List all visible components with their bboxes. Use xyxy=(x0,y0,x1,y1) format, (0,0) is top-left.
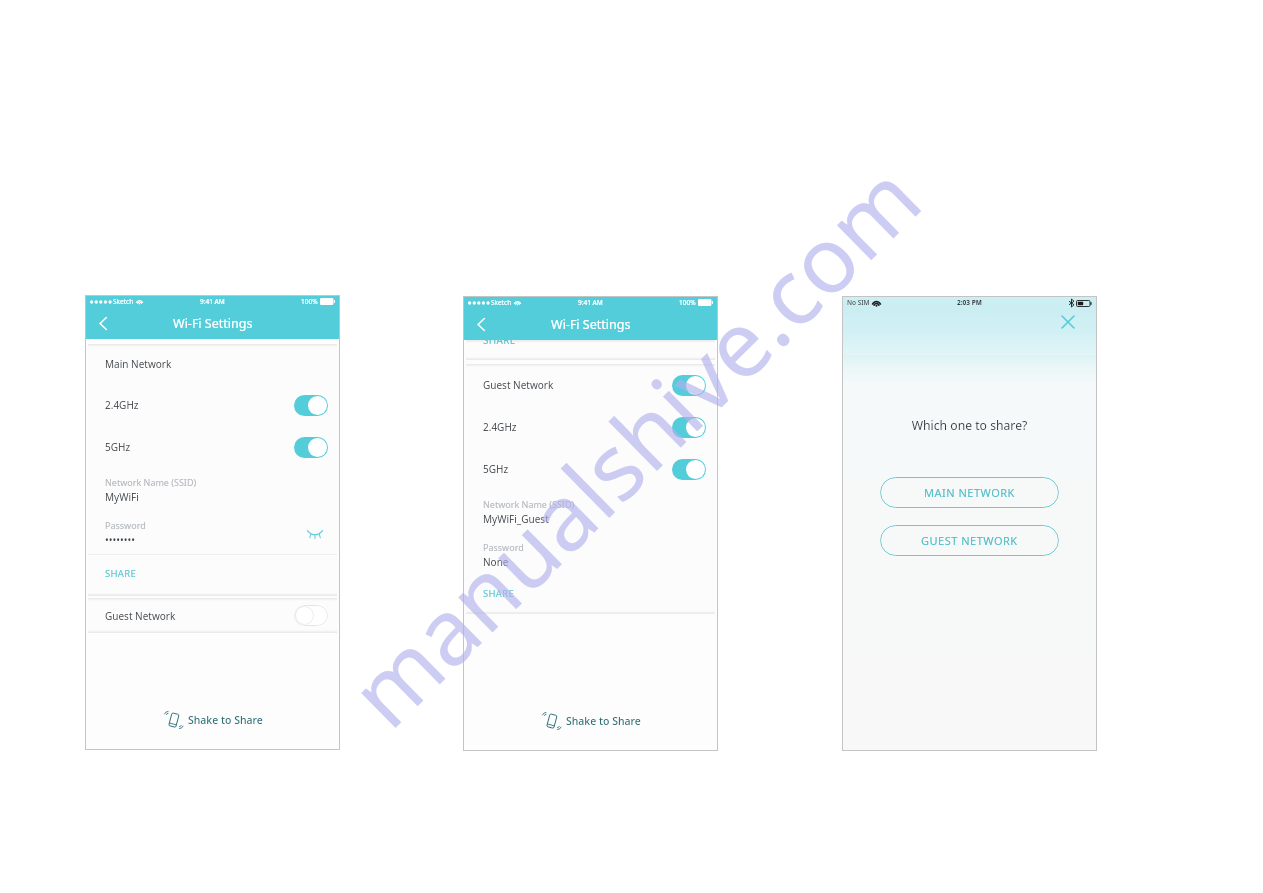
staticText: 5GHz xyxy=(105,440,131,454)
button[interactable]: 5GHz xyxy=(88,426,337,468)
staticText: •••••••• xyxy=(105,533,136,547)
button[interactable]: GUEST NETWORK xyxy=(880,525,1059,556)
staticText: Main Network xyxy=(105,357,172,371)
staticText: SHARE xyxy=(483,340,516,347)
staticText: 9:41 AM xyxy=(578,298,603,307)
button[interactable]: SHARE xyxy=(88,555,337,595)
staticText: 100% xyxy=(679,298,696,307)
staticText: None xyxy=(483,555,509,569)
button[interactable]: Switch off xyxy=(294,605,328,626)
button[interactable]: Back xyxy=(465,309,497,340)
staticText: GUEST NETWORK xyxy=(921,533,1018,548)
staticText: 2.4GHz xyxy=(483,420,517,434)
staticText: 5GHz xyxy=(483,462,509,476)
button[interactable]: MAIN NETWORK xyxy=(880,477,1059,508)
button[interactable]: Switch on xyxy=(672,375,706,396)
button[interactable]: Shake to Share xyxy=(541,711,641,731)
button[interactable]: 5GHz xyxy=(466,448,715,490)
button[interactable]: Switch on xyxy=(672,459,706,480)
staticText: Wi-Fi Settings xyxy=(551,316,631,333)
button[interactable]: Guest Network xyxy=(466,364,715,406)
button[interactable]: Shake to Share xyxy=(163,710,263,730)
staticText: Password xyxy=(105,519,146,531)
staticText: 100% xyxy=(301,297,318,306)
staticText: Password xyxy=(483,541,524,553)
staticText: Network Name (SSID) xyxy=(105,476,197,488)
staticText: SHARE xyxy=(483,587,515,600)
button[interactable]: SHARE xyxy=(466,576,715,614)
staticText: 9:41 AM xyxy=(200,297,225,306)
staticText: Guest Network xyxy=(105,609,176,623)
staticText: Shake to Share xyxy=(188,713,263,727)
staticText: 2.4GHz xyxy=(105,398,139,412)
button[interactable]: Switch on xyxy=(294,395,328,416)
button[interactable]: Guest Network xyxy=(88,598,337,633)
staticText: No SIM xyxy=(847,298,870,307)
staticText: Sketch xyxy=(491,298,512,307)
staticText: 2:03 PM xyxy=(957,298,982,307)
staticText: Which one to share? xyxy=(842,417,1097,434)
staticText: Shake to Share xyxy=(566,714,641,728)
staticText: MyWiFi xyxy=(105,490,139,504)
staticText: MAIN NETWORK xyxy=(924,485,1015,500)
staticText: Network Name (SSID) xyxy=(483,498,575,510)
button[interactable]: Show password xyxy=(304,522,326,544)
button[interactable]: Switch on xyxy=(672,417,706,438)
staticText: Guest Network xyxy=(483,378,554,392)
staticText: manualshive.com xyxy=(322,136,946,752)
staticText: Wi-Fi Settings xyxy=(173,315,253,332)
button[interactable]: Close xyxy=(1056,310,1080,334)
staticText: Sketch xyxy=(113,297,134,306)
button[interactable]: 2.4GHz xyxy=(466,406,715,448)
staticText: SHARE xyxy=(105,567,137,580)
button[interactable]: Back xyxy=(87,308,119,339)
button[interactable]: Switch on xyxy=(294,437,328,458)
button[interactable]: 2.4GHz xyxy=(88,384,337,426)
staticText: MyWiFi_Guest xyxy=(483,512,549,526)
